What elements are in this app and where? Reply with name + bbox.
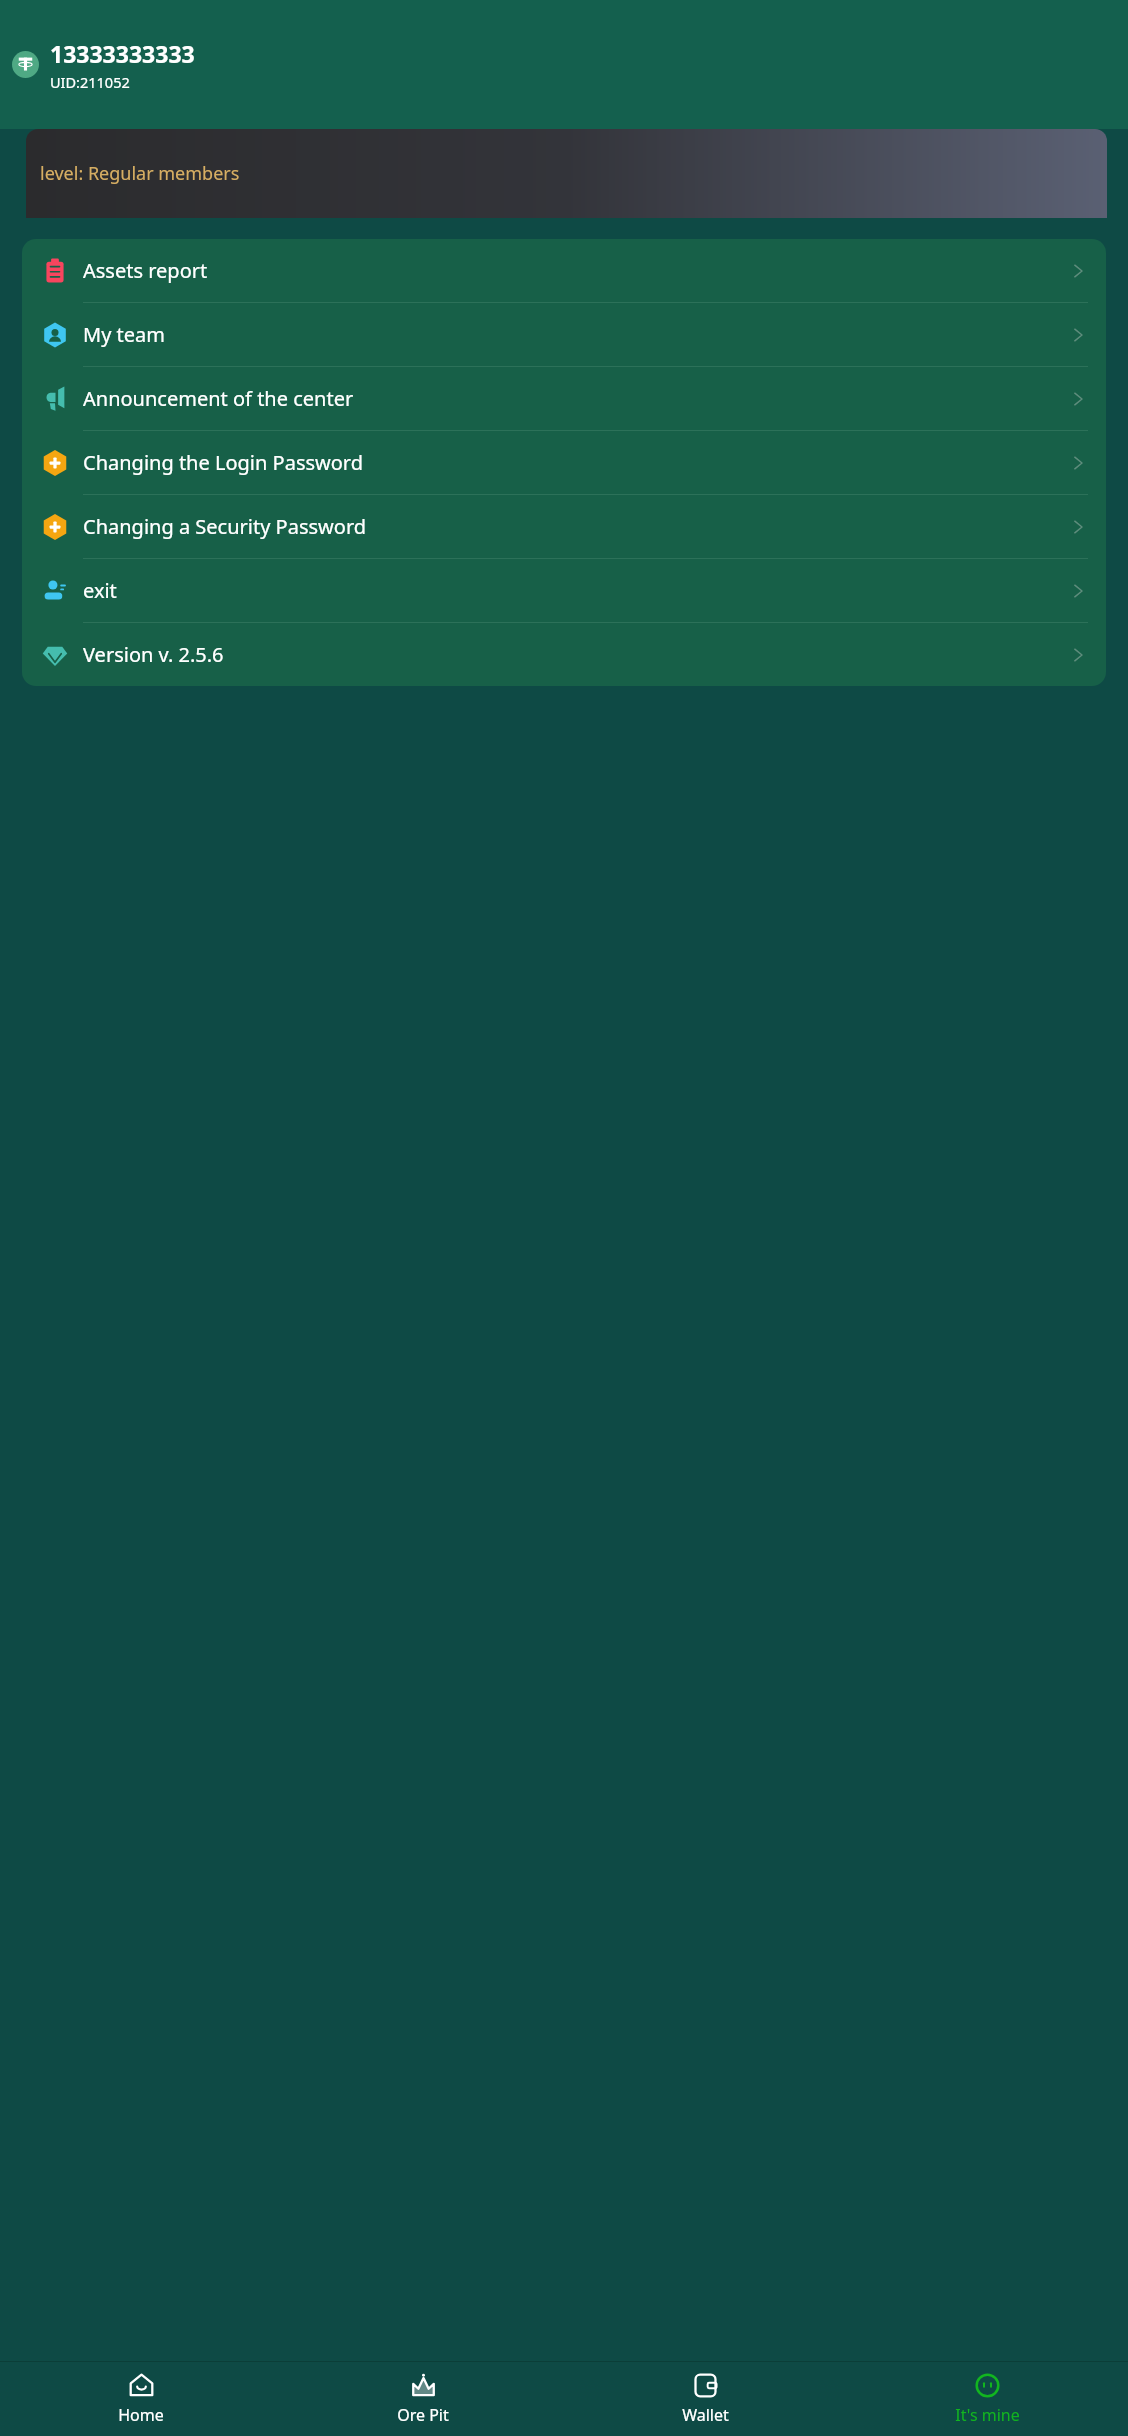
staticText: Announcement of the center bbox=[83, 385, 354, 412]
button[interactable]: level: Regular members bbox=[26, 129, 1107, 218]
button[interactable]: Announcement of the center bbox=[22, 367, 1106, 431]
staticText: 13333333333 bbox=[50, 38, 195, 69]
button[interactable]: Home bbox=[0, 2362, 282, 2436]
button[interactable]: Version v. 2.5.6 bbox=[22, 623, 1106, 686]
button[interactable]: Wallet bbox=[564, 2362, 846, 2436]
staticText: My team bbox=[83, 321, 165, 348]
button[interactable]: Changing the Login Password bbox=[22, 431, 1106, 495]
button[interactable]: exit bbox=[22, 559, 1106, 623]
button[interactable]: Profile avatar bbox=[12, 51, 39, 78]
staticText: Wallet bbox=[682, 2404, 729, 2426]
staticText: Changing a Security Password bbox=[83, 513, 367, 540]
button[interactable]: It's mine bbox=[846, 2362, 1128, 2436]
staticText: It's mine bbox=[955, 2404, 1020, 2426]
staticText: UID:211052 bbox=[50, 72, 130, 92]
staticText: exit bbox=[83, 577, 117, 604]
staticText: Version v. 2.5.6 bbox=[83, 641, 224, 668]
button[interactable]: Ore Pit bbox=[282, 2362, 564, 2436]
button[interactable]: Assets report bbox=[22, 239, 1106, 303]
staticText: Assets report bbox=[83, 257, 208, 284]
button[interactable]: My team bbox=[22, 303, 1106, 367]
button[interactable]: Changing a Security Password bbox=[22, 495, 1106, 559]
staticText: level: Regular members bbox=[40, 161, 240, 186]
staticText: Ore Pit bbox=[397, 2404, 449, 2426]
staticText: Changing the Login Password bbox=[83, 449, 364, 476]
staticText: Home bbox=[118, 2404, 164, 2426]
